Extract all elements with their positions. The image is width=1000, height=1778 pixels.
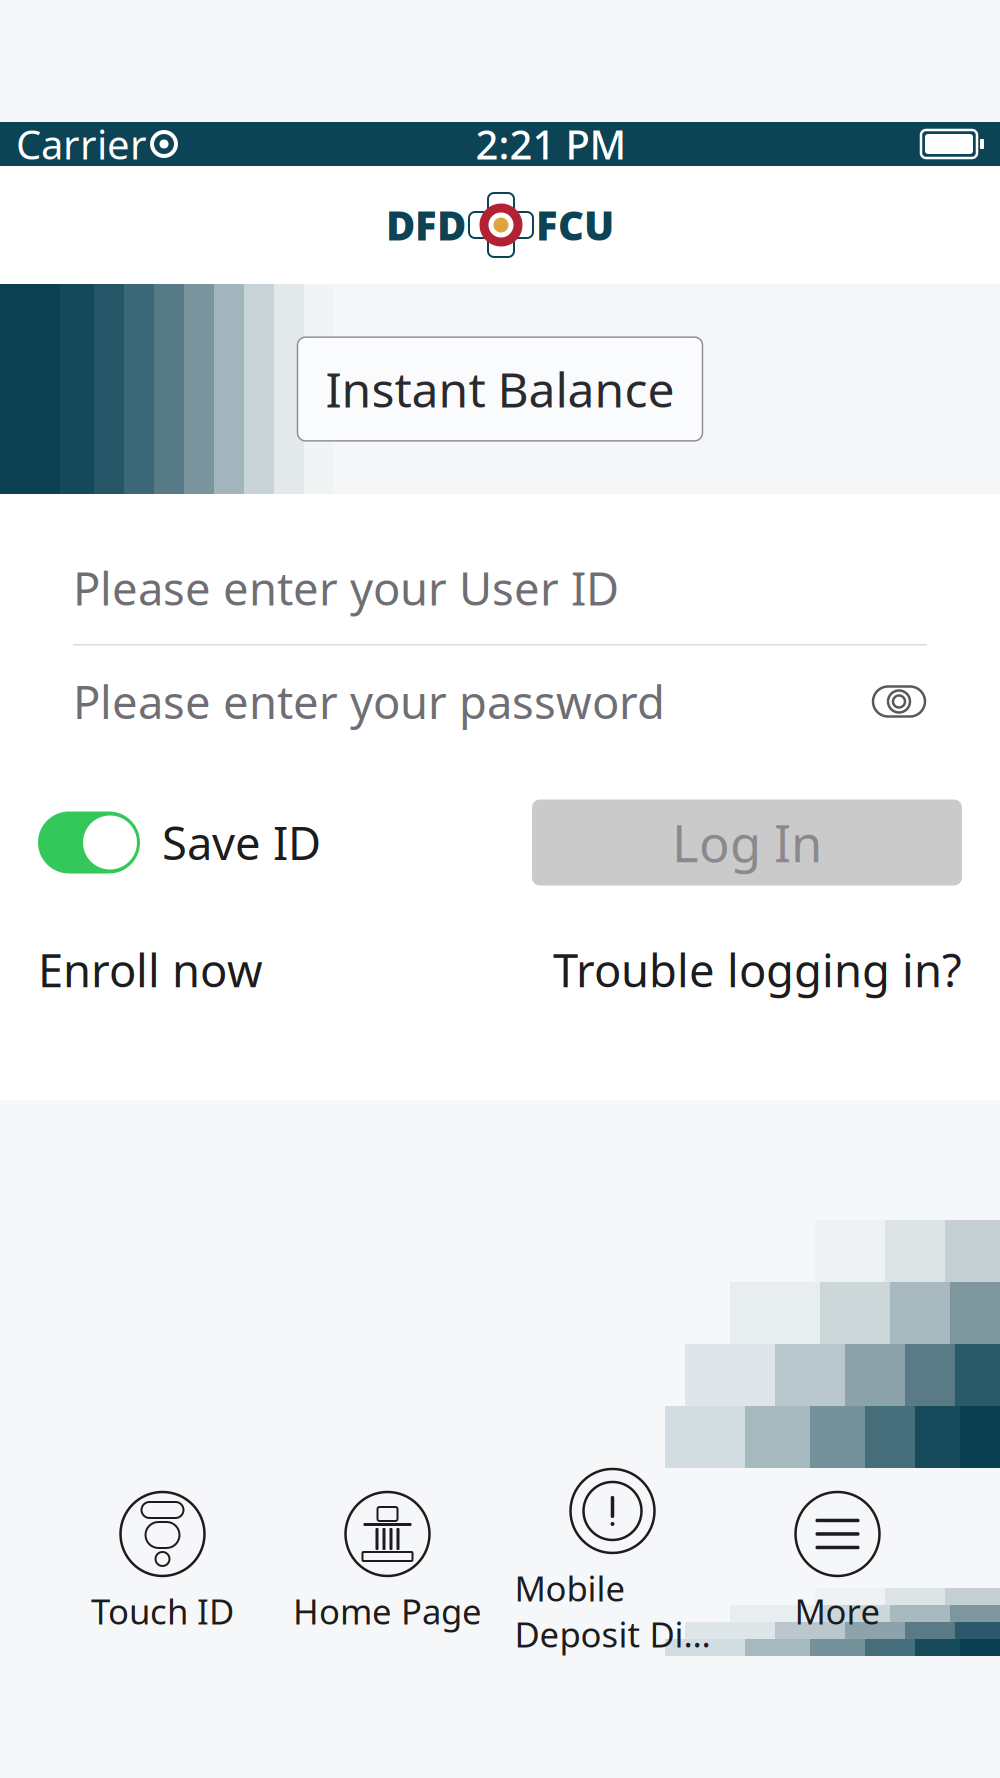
button[interactable]: Mobile Deposit Di... — [500, 1482, 725, 1642]
staticText: More — [794, 1588, 880, 1634]
button[interactable]: Please enter your User ID — [37, 532, 963, 644]
button[interactable]: Save ID — [38, 811, 321, 873]
staticText: Touch ID — [91, 1588, 234, 1634]
staticText: Save ID — [162, 812, 321, 873]
button[interactable]: More — [725, 1482, 950, 1642]
staticText: Instant Balance — [325, 357, 674, 421]
staticText: Please enter your password — [73, 671, 665, 732]
staticText: Mobile Deposit Di... — [514, 1565, 710, 1657]
staticText: Log In — [672, 809, 822, 876]
button[interactable]: Log In — [532, 799, 962, 885]
button[interactable]: Enroll now — [38, 939, 263, 1000]
button[interactable]: Please enter your password — [37, 645, 963, 757]
button[interactable]: Touch ID — [50, 1482, 275, 1642]
staticText: Home Page — [293, 1588, 482, 1634]
button[interactable]: Home Page — [275, 1482, 500, 1642]
button[interactable]: Trouble logging in? — [553, 939, 962, 1000]
staticText: DFD — [386, 198, 466, 251]
staticText: Enroll now — [38, 939, 263, 1000]
button[interactable]: Instant Balance — [297, 337, 702, 441]
staticText: FCU — [536, 198, 614, 251]
staticText: Please enter your User ID — [73, 558, 619, 618]
staticText: 2:21 PM — [475, 117, 626, 170]
staticText: Carrier — [16, 117, 147, 170]
staticText: Trouble logging in? — [553, 939, 962, 1000]
